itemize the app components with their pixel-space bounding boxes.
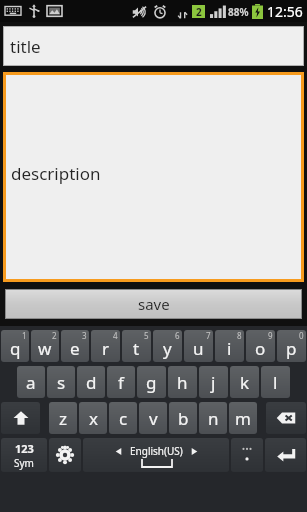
staticText: 12:56 xyxy=(267,2,303,21)
button[interactable]: z xyxy=(49,402,77,434)
staticText: j xyxy=(211,371,216,394)
button[interactable]: Settings xyxy=(49,438,81,472)
button[interactable]: 1 xyxy=(1,330,29,362)
staticText: y xyxy=(163,337,172,360)
staticText: English(US) xyxy=(130,444,183,458)
staticText: 6 xyxy=(175,330,180,341)
staticText: x xyxy=(89,407,98,430)
staticText: g xyxy=(146,371,157,394)
staticText: h xyxy=(177,371,188,394)
button[interactable]: Shift xyxy=(1,402,40,434)
staticText: 0 xyxy=(299,330,304,341)
button[interactable]: Period xyxy=(231,438,263,472)
button[interactable]: l xyxy=(261,366,290,398)
staticText: description xyxy=(11,162,101,185)
staticText: 8 xyxy=(237,330,242,341)
button[interactable]: h xyxy=(168,366,197,398)
button[interactable]: j xyxy=(199,366,228,398)
staticText: title xyxy=(10,35,41,58)
button[interactable]: a xyxy=(17,366,45,398)
button[interactable]: b xyxy=(169,402,197,434)
button[interactable]: 8 xyxy=(215,330,244,362)
staticText: d xyxy=(86,371,97,394)
staticText: 3 xyxy=(82,330,87,341)
button[interactable]: 5 xyxy=(122,330,151,362)
staticText: s xyxy=(57,371,66,394)
button[interactable]: 123 xyxy=(1,438,47,472)
staticText: 9 xyxy=(268,330,273,341)
staticText: a xyxy=(26,371,36,394)
staticText: 1 xyxy=(22,330,27,341)
staticText: 5 xyxy=(144,330,149,341)
staticText: 88% xyxy=(228,5,249,19)
button[interactable]: n xyxy=(199,402,227,434)
staticText: f xyxy=(118,371,124,394)
staticText: v xyxy=(149,407,158,430)
staticText: m xyxy=(235,407,251,430)
staticText: p xyxy=(286,337,297,360)
staticText: 2 xyxy=(52,330,57,341)
staticText: l xyxy=(273,371,278,394)
staticText: 2 xyxy=(196,5,202,18)
button[interactable]: s xyxy=(47,366,75,398)
button[interactable]: f xyxy=(107,366,135,398)
staticText: z xyxy=(59,407,67,430)
staticText: n xyxy=(208,407,219,430)
staticText: save xyxy=(138,294,170,314)
button[interactable]: Backspace xyxy=(266,402,306,434)
staticText: r xyxy=(102,337,110,360)
staticText: t xyxy=(133,337,140,360)
button[interactable]: 9 xyxy=(246,330,275,362)
staticText: 123 xyxy=(15,441,34,456)
staticText: w xyxy=(38,337,52,360)
button[interactable]: description xyxy=(6,75,301,279)
button[interactable]: d xyxy=(77,366,105,398)
button[interactable]: 7 xyxy=(184,330,213,362)
button[interactable]: save xyxy=(5,289,302,319)
staticText: q xyxy=(10,337,21,360)
button[interactable]: Enter xyxy=(265,438,306,472)
staticText: b xyxy=(178,407,189,430)
staticText: c xyxy=(119,407,128,430)
staticText: k xyxy=(240,371,250,394)
button[interactable]: 4 xyxy=(91,330,120,362)
button[interactable]: 0 xyxy=(277,330,306,362)
staticText: i xyxy=(227,337,232,360)
staticText: o xyxy=(255,337,266,360)
staticText: 7 xyxy=(206,330,211,341)
staticText: e xyxy=(70,337,80,360)
button[interactable]: v xyxy=(139,402,167,434)
button[interactable]: c xyxy=(109,402,137,434)
button[interactable]: title xyxy=(3,26,304,66)
button[interactable]: English(US) xyxy=(83,438,229,472)
button[interactable]: 3 xyxy=(61,330,89,362)
button[interactable]: x xyxy=(79,402,107,434)
staticText: u xyxy=(193,337,204,360)
button[interactable]: 2 xyxy=(31,330,59,362)
button[interactable]: m xyxy=(229,402,257,434)
staticText: 4 xyxy=(113,330,118,341)
button[interactable]: k xyxy=(230,366,259,398)
button[interactable]: g xyxy=(137,366,166,398)
button[interactable]: 6 xyxy=(153,330,182,362)
staticText: Sym xyxy=(14,456,34,470)
